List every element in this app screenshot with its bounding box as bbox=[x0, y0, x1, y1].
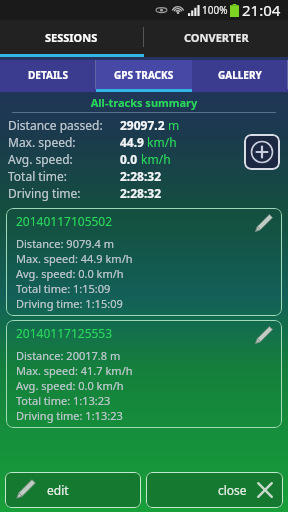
button[interactable]: Edit track bbox=[252, 325, 274, 347]
staticText: km/h bbox=[144, 134, 177, 150]
staticText: GALLERY bbox=[218, 68, 262, 82]
staticText: 20140117125553 bbox=[16, 325, 113, 341]
staticText: Total time: bbox=[8, 168, 120, 184]
staticText: All-tracks summary bbox=[8, 95, 280, 110]
button[interactable]: GPS TRACKS bbox=[96, 60, 192, 89]
staticText: 44.9 bbox=[120, 134, 144, 150]
staticText: 0.0 bbox=[120, 151, 138, 167]
staticText: 20140117105502 bbox=[16, 213, 113, 229]
staticText: Driving time: bbox=[8, 185, 120, 201]
staticText: km/h bbox=[138, 151, 171, 167]
button[interactable]: close bbox=[146, 472, 283, 508]
staticText: edit bbox=[47, 482, 69, 498]
staticText: Avg. speed: 0.0 km/h bbox=[16, 378, 124, 393]
staticText: 2:28:32 bbox=[120, 168, 162, 184]
button[interactable]: CONVERTER bbox=[144, 20, 288, 54]
staticText: CONVERTER bbox=[184, 30, 249, 45]
button[interactable]: Add track bbox=[244, 134, 280, 170]
button[interactable]: edit bbox=[5, 472, 141, 508]
staticText: Avg. speed: 0.0 km/h bbox=[16, 266, 124, 281]
staticText: Max. speed: 41.7 km/h bbox=[16, 363, 133, 378]
staticText: Total time: 1:13:23 bbox=[16, 393, 111, 408]
staticText: Avg. speed: bbox=[8, 151, 120, 167]
staticText: Max. speed: bbox=[8, 134, 120, 150]
button[interactable]: 20140117105502 bbox=[6, 208, 282, 316]
button[interactable]: 20140117125553 bbox=[6, 320, 282, 428]
staticText: Total time: 1:15:09 bbox=[16, 281, 111, 296]
staticText: DETAILS bbox=[28, 68, 68, 82]
button[interactable]: GALLERY bbox=[192, 60, 288, 89]
staticText: Max. speed: 44.9 km/h bbox=[16, 251, 133, 266]
staticText: 100% bbox=[202, 3, 228, 17]
button[interactable]: DETAILS bbox=[0, 60, 96, 89]
staticText: Distance passed: bbox=[8, 117, 120, 133]
button[interactable]: Edit track bbox=[252, 213, 274, 235]
staticText: 21:04 bbox=[242, 0, 281, 20]
staticText: 29097.2 bbox=[120, 117, 165, 133]
staticText: 2:28:32 bbox=[120, 185, 162, 201]
staticText: Driving time: 1:13:23 bbox=[16, 408, 123, 423]
button[interactable]: SESSIONS bbox=[0, 20, 143, 54]
staticText: close bbox=[218, 482, 247, 498]
staticText: SESSIONS bbox=[45, 30, 98, 45]
staticText: Distance: 20017.8 m bbox=[16, 348, 121, 363]
staticText: Distance: 9079.4 m bbox=[16, 236, 114, 251]
staticText: GPS TRACKS bbox=[114, 68, 174, 82]
staticText: m bbox=[165, 117, 180, 133]
staticText: Driving time: 1:15:09 bbox=[16, 296, 123, 311]
